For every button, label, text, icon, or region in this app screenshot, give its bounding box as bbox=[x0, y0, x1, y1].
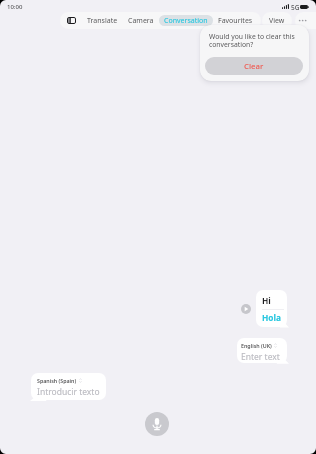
button[interactable]: Conversation bbox=[159, 15, 213, 26]
button[interactable]: More options bbox=[295, 12, 316, 29]
staticText: Enter text bbox=[241, 351, 280, 363]
staticText: Would you like to clear this conversatio… bbox=[209, 32, 296, 49]
staticText: Hi bbox=[262, 295, 271, 306]
button[interactable]: Favourites bbox=[213, 12, 258, 29]
button[interactable]: Spanish (Spain) bbox=[31, 373, 106, 400]
button[interactable]: Translate bbox=[82, 12, 123, 29]
staticText: Favourites bbox=[218, 16, 253, 26]
staticText: Conversation bbox=[164, 16, 208, 26]
staticText: Spanish (Spain) bbox=[37, 377, 77, 384]
button[interactable]: View bbox=[262, 12, 292, 29]
staticText: Clear bbox=[244, 61, 264, 72]
staticText: Introducir texto bbox=[37, 386, 100, 398]
button[interactable]: Microphone bbox=[145, 412, 169, 436]
button[interactable]: Camera bbox=[123, 12, 159, 29]
button[interactable]: Play audio bbox=[241, 304, 251, 314]
staticText: 5G bbox=[291, 3, 300, 12]
staticText: English (UK) bbox=[241, 342, 272, 349]
button[interactable]: English (UK) bbox=[237, 338, 287, 363]
staticText: View bbox=[269, 16, 285, 26]
button[interactable]: Sidebar bbox=[60, 12, 82, 29]
staticText: Translate bbox=[87, 16, 118, 26]
staticText: Hola bbox=[262, 312, 281, 323]
button[interactable]: Clear bbox=[205, 57, 303, 75]
staticText: 10:00 bbox=[7, 3, 23, 11]
button[interactable]: Hi bbox=[256, 290, 287, 327]
staticText: Camera bbox=[128, 16, 154, 26]
